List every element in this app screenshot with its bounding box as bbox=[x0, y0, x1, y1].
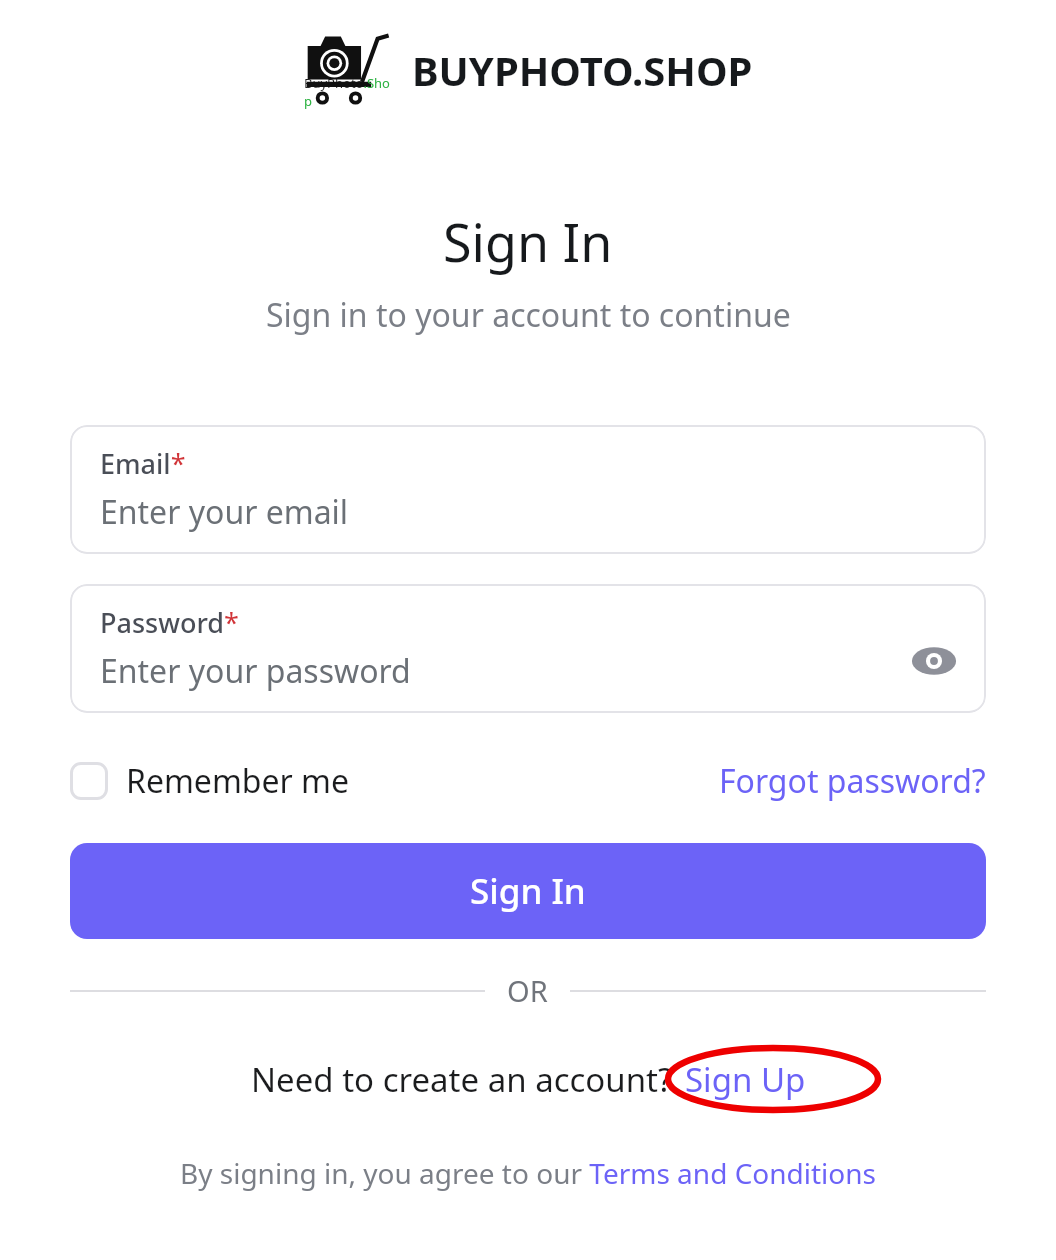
staticText: Sign Up bbox=[685, 1057, 806, 1102]
staticText: Need to create an account? bbox=[251, 1057, 673, 1102]
button[interactable]: Sign Up bbox=[685, 1057, 806, 1102]
button[interactable]: Sign In bbox=[70, 843, 986, 939]
staticText: Email* bbox=[100, 445, 186, 482]
button[interactable]: Remember me bbox=[70, 755, 350, 807]
staticText: BuyPhoto.Shop bbox=[304, 74, 396, 110]
staticText: Sign In bbox=[470, 867, 586, 915]
button[interactable]: Forgot password? bbox=[719, 755, 986, 807]
staticText: Remember me bbox=[126, 759, 350, 803]
staticText: Sign in to your account to continue bbox=[266, 293, 791, 337]
staticText: Sign In bbox=[443, 206, 613, 277]
staticText: OR bbox=[507, 971, 548, 1010]
button[interactable]: Email* bbox=[70, 425, 986, 554]
button[interactable]: By signing in, you agree to our Terms an… bbox=[180, 1154, 876, 1192]
staticText: Password* bbox=[100, 604, 239, 641]
staticText: Enter your email bbox=[100, 490, 349, 534]
staticText: BUYPHOTO.SHOP bbox=[412, 43, 753, 97]
staticText: Enter your password bbox=[100, 649, 411, 693]
button[interactable]: Show password bbox=[906, 633, 962, 689]
staticText: Forgot password? bbox=[719, 759, 986, 803]
button[interactable]: BuyPhoto.Shop logo bbox=[304, 30, 396, 110]
button[interactable]: Password* bbox=[70, 584, 986, 713]
